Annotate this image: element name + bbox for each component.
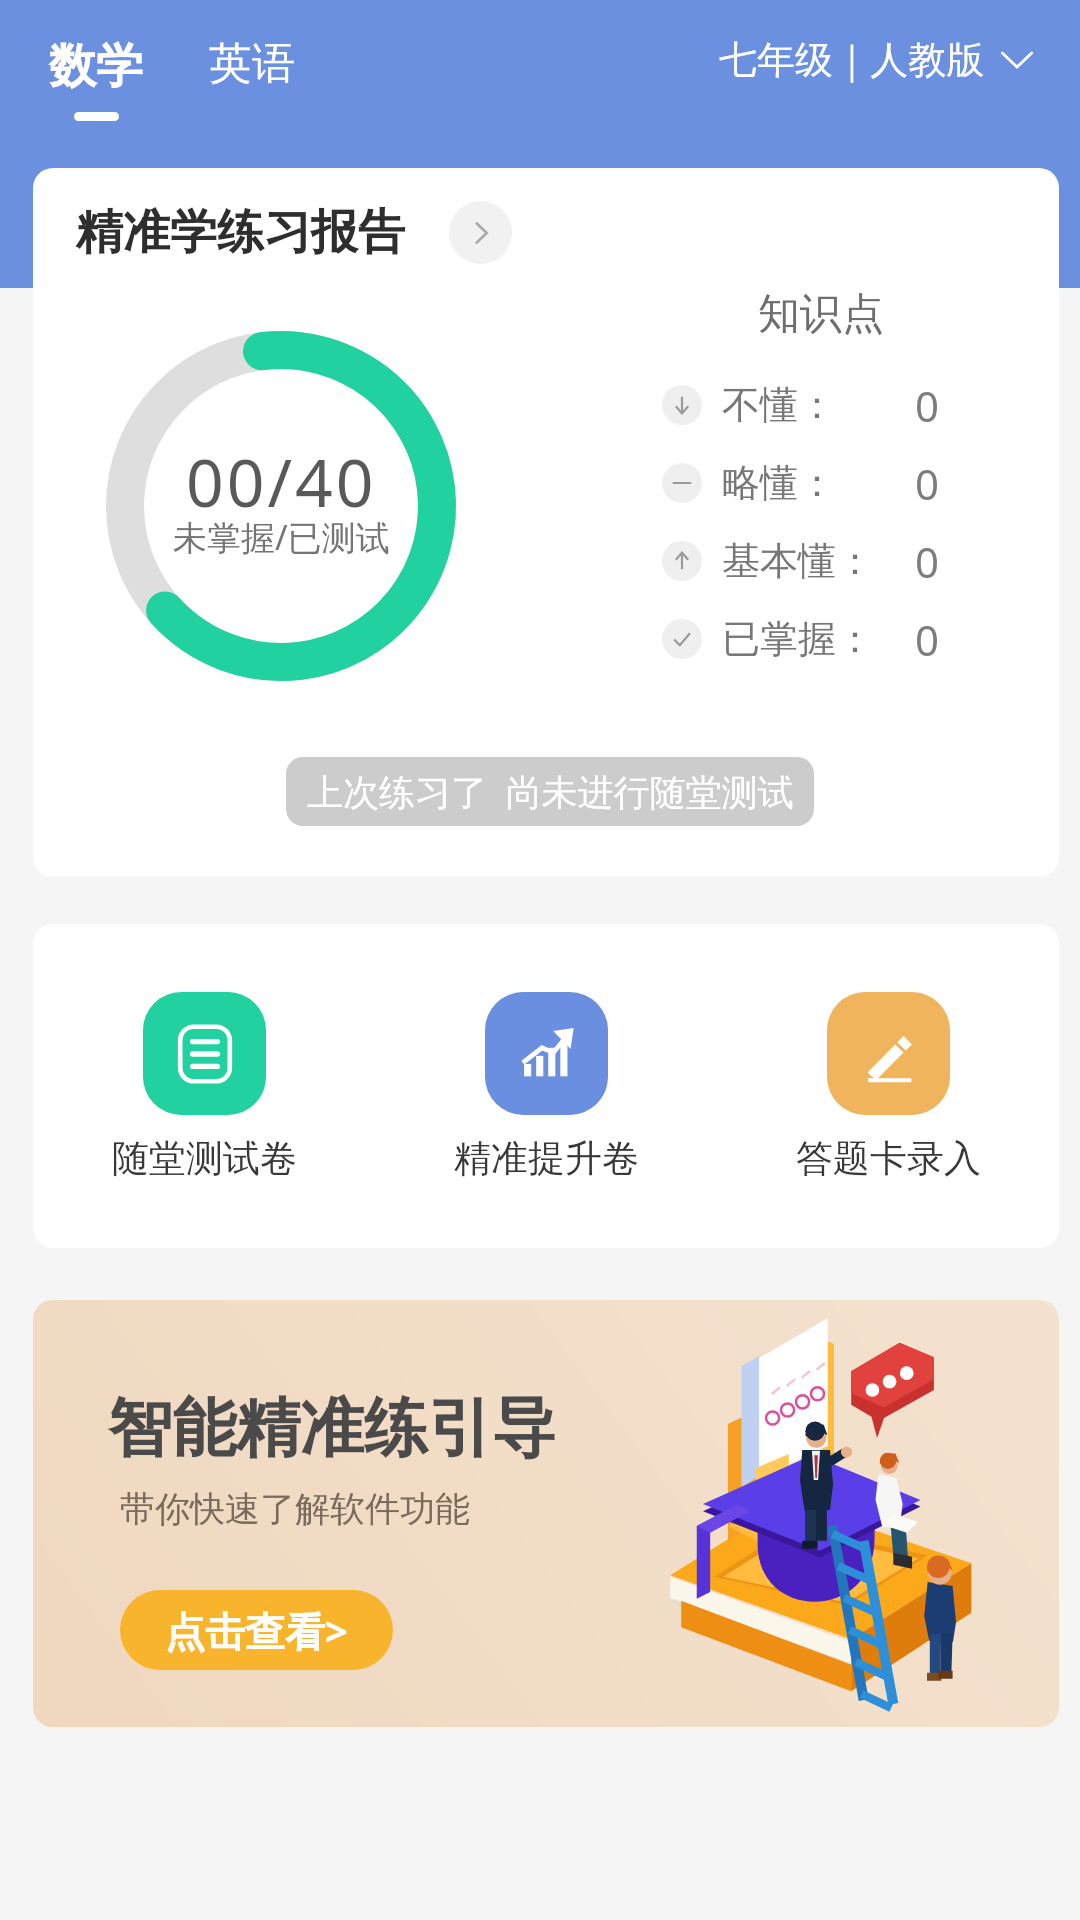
- button[interactable]: 英语: [209, 0, 295, 91]
- staticText: 不懂：: [722, 381, 836, 429]
- other: 选择教材: [1001, 44, 1033, 76]
- staticText: 英语: [209, 37, 295, 91]
- button[interactable]: 随堂测试卷: [112, 992, 297, 1182]
- button[interactable]: 上次练习了 尚未进行随堂测试: [286, 757, 814, 826]
- button[interactable]: 精准学练习报告: [76, 201, 512, 264]
- button[interactable]: 答题卡录入: [796, 992, 981, 1182]
- staticText: 精准学练习报告: [76, 203, 405, 262]
- staticText: 智能精准练引导: [108, 1388, 556, 1469]
- staticText: 略懂：: [722, 459, 836, 507]
- staticText: 数学: [49, 37, 143, 96]
- staticText: 点击查看>: [165, 1603, 348, 1658]
- staticText: 0: [915, 533, 940, 590]
- staticText: 基本懂：: [722, 537, 874, 585]
- staticText: 精准提升卷: [454, 1135, 639, 1182]
- staticText: 已掌握：: [722, 615, 874, 663]
- staticText: 答题卡录入: [796, 1135, 981, 1182]
- staticText: 0: [915, 455, 940, 512]
- button[interactable]: 智能精准练引导: [33, 1300, 1059, 1727]
- staticText: 七年级｜人教版: [719, 36, 985, 84]
- button[interactable]: 数学: [49, 0, 143, 121]
- button[interactable]: 七年级｜人教版: [719, 0, 1033, 84]
- staticText: 随堂测试卷: [112, 1135, 297, 1182]
- staticText: 0: [915, 377, 940, 434]
- staticText: 00/40: [186, 436, 377, 526]
- button[interactable]: 精准提升卷: [454, 992, 639, 1182]
- button[interactable]: 查看练习报告详情: [449, 201, 512, 264]
- staticText: 未掌握/已测试: [173, 514, 390, 560]
- staticText: 带你快速了解软件功能: [120, 1487, 470, 1531]
- button[interactable]: 点击查看>: [120, 1590, 393, 1670]
- staticText: 上次练习了 尚未进行随堂测试: [307, 767, 794, 816]
- staticText: 知识点: [758, 288, 884, 341]
- staticText: 0: [915, 611, 940, 668]
